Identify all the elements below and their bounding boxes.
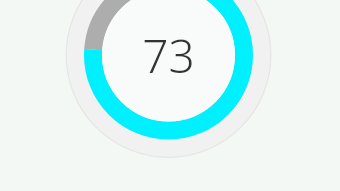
staticText: 73	[142, 24, 195, 87]
button[interactable]: Workout progress 73	[0, 0, 340, 191]
